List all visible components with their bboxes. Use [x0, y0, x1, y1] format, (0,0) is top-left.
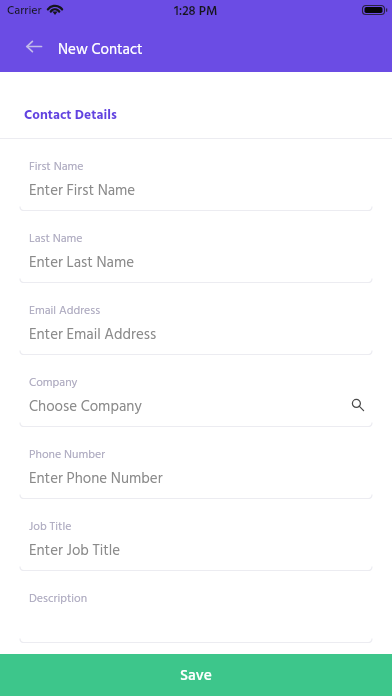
staticText: Enter Email Address — [29, 323, 157, 347]
staticText: Enter First Name — [29, 179, 136, 203]
staticText: Phone Number — [29, 445, 106, 464]
button[interactable]: Company — [0, 355, 392, 427]
staticText: Last Name — [29, 229, 83, 248]
staticText: Carrier — [7, 1, 42, 20]
staticText: Enter Last Name — [29, 251, 135, 275]
staticText: Job Title — [29, 517, 72, 536]
button[interactable]: Last Name — [0, 211, 392, 283]
button[interactable]: First Name — [0, 139, 392, 211]
button[interactable]: Back — [16, 30, 52, 62]
staticText: First Name — [29, 157, 84, 176]
staticText: Contact Details — [24, 105, 117, 127]
button[interactable]: Email Address — [0, 283, 392, 355]
staticText: Email Address — [29, 301, 101, 320]
button[interactable]: Save — [0, 654, 392, 696]
staticText: Description — [29, 589, 88, 608]
button[interactable]: Phone Number — [0, 427, 392, 499]
button[interactable]: Search company — [343, 390, 373, 420]
button[interactable]: Job Title — [0, 499, 392, 571]
staticText: 1:28 PM — [174, 1, 218, 22]
staticText: New Contact — [58, 38, 143, 62]
staticText: Company — [29, 373, 78, 392]
staticText: Enter Job Title — [29, 539, 121, 563]
staticText: Enter Phone Number — [29, 467, 163, 491]
staticText: Save — [180, 664, 212, 689]
button[interactable]: Description — [0, 571, 392, 643]
staticText: Choose Company — [29, 395, 142, 419]
